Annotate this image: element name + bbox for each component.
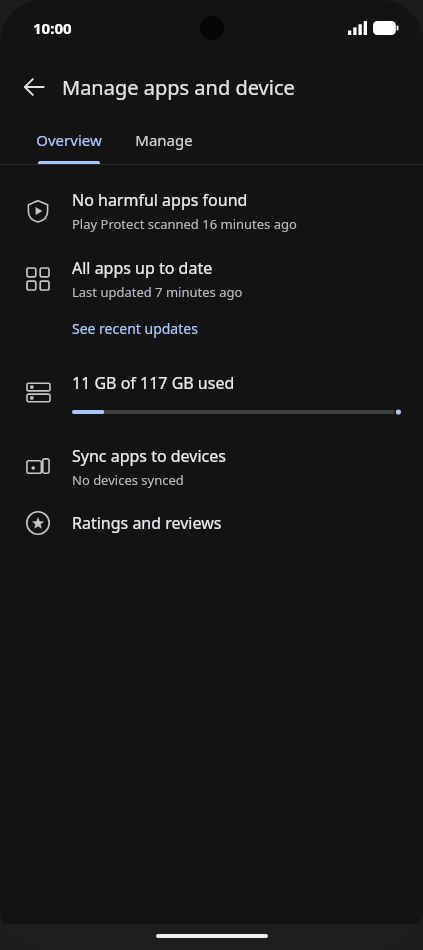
staticText: Overview <box>36 130 102 150</box>
staticText: All apps up to date <box>72 257 213 279</box>
button[interactable]: Back <box>10 63 58 111</box>
button[interactable]: Sync apps to devices <box>0 443 423 489</box>
button[interactable]: All apps up to date <box>0 255 423 301</box>
button[interactable]: Ratings and reviews <box>0 507 423 539</box>
staticText: Ratings and reviews <box>72 512 222 534</box>
staticText: No harmful apps found <box>72 189 248 211</box>
staticText: Sync apps to devices <box>72 445 226 467</box>
staticText: Manage <box>135 130 193 150</box>
staticText: See recent updates <box>72 319 198 338</box>
staticText: Play Protect scanned 16 minutes ago <box>72 215 297 233</box>
staticText: 10:00 <box>33 18 72 38</box>
staticText: 11 GB of 117 GB used <box>72 372 235 394</box>
staticText: Manage apps and device <box>62 74 295 101</box>
button[interactable]: No harmful apps found <box>0 187 423 233</box>
staticText: No devices synced <box>72 471 184 489</box>
button[interactable]: 11 GB of 117 GB used <box>0 370 423 417</box>
staticText: Last updated 7 minutes ago <box>72 283 243 301</box>
button[interactable]: Overview <box>26 118 112 164</box>
button[interactable]: See recent updates <box>56 315 214 342</box>
button[interactable]: Manage <box>126 118 202 164</box>
